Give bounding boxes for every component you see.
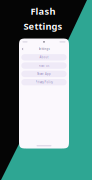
staticText: Settings [23, 20, 62, 32]
staticText: Rate us [39, 64, 49, 67]
staticText: About [39, 55, 48, 59]
staticText: Settings [38, 47, 49, 51]
button[interactable]: Share App [21, 71, 67, 77]
button[interactable]: Rate us [21, 62, 67, 69]
staticText: Privacy Policy [35, 80, 52, 84]
staticText: Flash [30, 5, 55, 17]
button[interactable]: About [21, 54, 67, 60]
staticText: Share App [37, 72, 51, 76]
button[interactable]: Privacy Policy [21, 79, 67, 85]
button[interactable]: Back [21, 46, 24, 51]
